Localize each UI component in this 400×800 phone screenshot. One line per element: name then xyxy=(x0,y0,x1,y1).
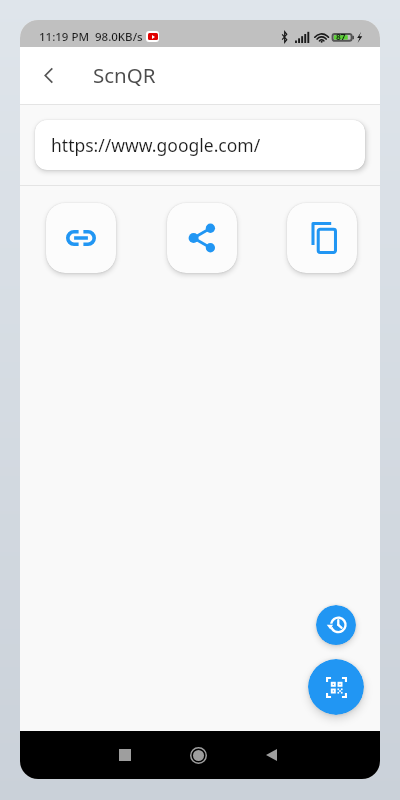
staticText: ScnQR xyxy=(93,61,156,89)
button[interactable]: Open link xyxy=(46,203,116,273)
staticText: 11:19 PM 98.0KB/s xyxy=(39,29,143,45)
button[interactable]: Copy xyxy=(287,203,357,273)
button[interactable]: Back xyxy=(24,51,72,99)
staticText: 87 xyxy=(336,31,346,43)
staticText: https://www.google.com/ xyxy=(51,133,261,157)
button[interactable]: Home xyxy=(181,738,215,772)
button[interactable]: Share xyxy=(167,203,237,273)
button[interactable]: Recents xyxy=(108,738,142,772)
button[interactable]: Scan QR code xyxy=(308,659,364,715)
button[interactable]: Back xyxy=(254,738,288,772)
button[interactable]: https://www.google.com/ xyxy=(35,120,365,170)
button[interactable]: History xyxy=(316,605,356,645)
